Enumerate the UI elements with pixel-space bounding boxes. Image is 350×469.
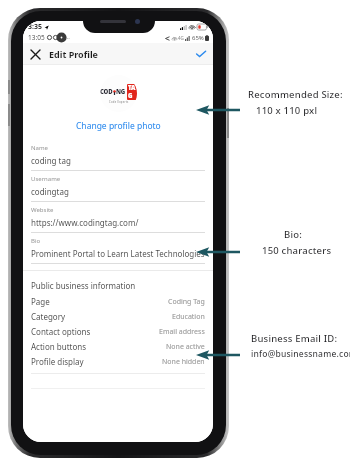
button[interactable]: Page bbox=[31, 294, 205, 309]
staticText: Email address bbox=[159, 327, 205, 337]
button[interactable]: Website bbox=[31, 202, 205, 233]
staticText: Contact options bbox=[31, 326, 91, 337]
staticText: Change profile photo bbox=[76, 120, 161, 132]
button[interactable]: COD bbox=[100, 75, 137, 112]
staticText: Name bbox=[31, 144, 48, 152]
button[interactable]: Contact options bbox=[31, 324, 205, 339]
button[interactable]: Public business information bbox=[31, 277, 205, 294]
button[interactable]: Username bbox=[31, 171, 205, 202]
button[interactable]: Bio bbox=[31, 233, 205, 264]
button[interactable]: Action buttons bbox=[31, 339, 205, 354]
staticText: Coding Tag bbox=[168, 297, 205, 307]
staticText: https://www.codingtag.com/ bbox=[31, 217, 139, 228]
staticText: ··· bbox=[65, 34, 70, 42]
staticText: TAG bbox=[128, 84, 136, 100]
staticText: 65% bbox=[192, 34, 204, 42]
staticText: Category bbox=[31, 311, 66, 322]
staticText: coding tag bbox=[31, 155, 71, 166]
button[interactable]: Profile display bbox=[31, 354, 205, 369]
staticText: Bio bbox=[31, 237, 41, 245]
staticText: 13:05 bbox=[28, 33, 45, 42]
staticText: Recommended Size: bbox=[248, 88, 343, 101]
staticText: NG bbox=[116, 88, 126, 96]
staticText: Code Experts bbox=[109, 100, 129, 104]
staticText: codingtag bbox=[31, 186, 69, 197]
staticText: Page bbox=[31, 296, 50, 307]
button[interactable]: Done bbox=[192, 45, 210, 63]
staticText: Profile display bbox=[31, 356, 84, 367]
staticText: Business Email ID: bbox=[251, 332, 338, 345]
staticText: Username bbox=[31, 175, 61, 183]
staticText: None hidden bbox=[162, 357, 205, 367]
staticText: Education bbox=[172, 312, 205, 322]
staticText: 150 characters bbox=[262, 244, 332, 257]
staticText: info@businessname.com bbox=[251, 348, 350, 360]
staticText: Bio: bbox=[284, 228, 302, 241]
button[interactable]: Name bbox=[31, 140, 205, 171]
staticText: Prominent Portal to Learn Latest Technol… bbox=[31, 248, 205, 259]
staticText: Action buttons bbox=[31, 341, 87, 352]
staticText: Website bbox=[31, 206, 54, 214]
staticText: 3:35 bbox=[28, 22, 42, 32]
button[interactable]: Change profile photo bbox=[70, 118, 167, 134]
button[interactable]: Category bbox=[31, 309, 205, 324]
staticText: Edit Profile bbox=[49, 48, 98, 60]
staticText: COD bbox=[100, 88, 113, 96]
staticText: Public business information bbox=[31, 280, 136, 291]
staticText: 4G bbox=[178, 35, 184, 41]
staticText: 110 x 110 pxl bbox=[256, 104, 318, 117]
staticText: None active bbox=[166, 342, 205, 352]
button[interactable]: Close bbox=[26, 45, 44, 63]
